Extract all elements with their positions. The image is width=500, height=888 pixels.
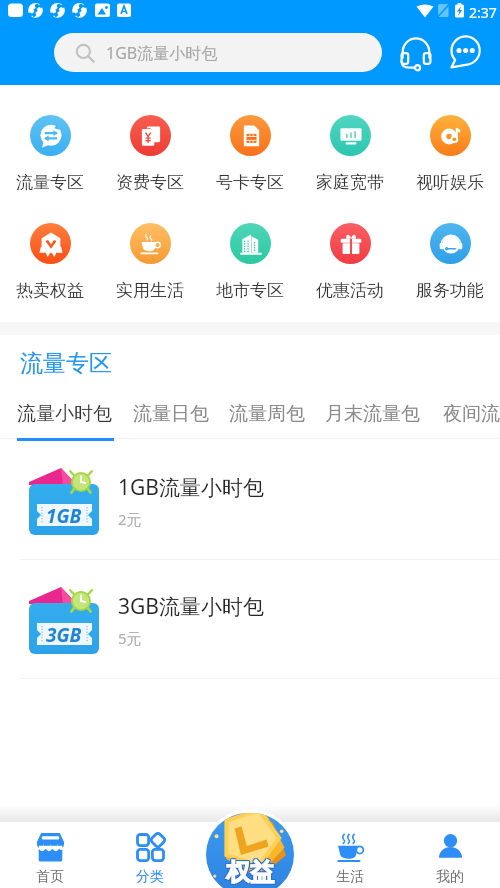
staticText: 2元 (118, 509, 142, 529)
staticText: 生活 (336, 868, 364, 886)
staticText: 权益 (226, 856, 274, 886)
staticText: 权益 (226, 857, 274, 887)
button[interactable]: 1GB (0, 441, 500, 560)
button[interactable]: 号卡专区 (200, 115, 300, 193)
staticText: 资费专区 (116, 172, 184, 193)
button[interactable]: 流量小时包 (17, 391, 114, 441)
button[interactable]: 首页 (0, 822, 100, 888)
staticText: 3GB (46, 622, 82, 648)
staticText: 月末流量包 (325, 402, 420, 426)
staticText: 优惠活动 (316, 280, 384, 301)
button[interactable]: 优惠活动 (300, 223, 400, 301)
button[interactable]: 夜间流量包 (443, 391, 500, 441)
button[interactable]: 月末流量包 (330, 391, 415, 441)
staticText: 1GB流量小时包 (118, 473, 264, 502)
staticText: 视听娱乐 (416, 172, 484, 193)
button[interactable]: 热卖权益 (0, 223, 100, 301)
button[interactable]: 视听娱乐 (400, 115, 500, 193)
staticText: 实用生活 (116, 280, 184, 301)
staticText: 权益 (225, 856, 273, 886)
button[interactable]: 我的 (400, 822, 500, 888)
button[interactable]: Messages (448, 33, 481, 72)
staticText: 5元 (118, 628, 142, 648)
staticText: 权益 (227, 857, 275, 887)
button[interactable]: 3GB (0, 560, 500, 679)
staticText: 服务功能 (416, 280, 484, 301)
staticText: 地市专区 (216, 280, 284, 301)
staticText: 首页 (36, 868, 64, 886)
staticText: 2:37 (469, 3, 497, 22)
staticText: 3GB流量小时包 (118, 592, 264, 621)
button[interactable]: 实用生活 (100, 223, 200, 301)
staticText: 流量周包 (229, 402, 305, 426)
button[interactable]: 生活 (300, 822, 400, 888)
staticText: 夜间流量包 (443, 402, 500, 426)
button[interactable]: 分类 (100, 822, 200, 888)
staticText: 号卡专区 (216, 172, 284, 193)
button[interactable]: 权益 (206, 813, 294, 888)
button[interactable]: Customer service (397, 33, 435, 72)
staticText: 热卖权益 (16, 280, 84, 301)
staticText: 1GB (46, 503, 82, 529)
button[interactable]: 地市专区 (200, 223, 300, 301)
staticText: 流量专区 (20, 349, 112, 378)
staticText: 分类 (136, 868, 164, 886)
staticText: 权益 (226, 858, 274, 888)
button[interactable]: 流量专区 (0, 115, 100, 193)
button[interactable]: 家庭宽带 (300, 115, 400, 193)
staticText: 流量小时包 (17, 402, 112, 426)
staticText: 权益 (225, 858, 273, 888)
button[interactable]: 服务功能 (400, 223, 500, 301)
staticText: 1GB流量小时包 (106, 42, 218, 64)
button[interactable]: 流量日包 (137, 391, 205, 441)
button[interactable]: 1GB流量小时包 (54, 33, 382, 72)
button[interactable]: 资费专区 (100, 115, 200, 193)
button[interactable]: 流量周包 (233, 391, 301, 441)
staticText: 流量专区 (16, 172, 84, 193)
staticText: 家庭宽带 (316, 172, 384, 193)
staticText: 权益 (227, 856, 275, 886)
staticText: 我的 (436, 868, 464, 886)
staticText: 流量日包 (133, 402, 209, 426)
staticText: 权益 (227, 858, 275, 888)
staticText: 权益 (225, 857, 273, 887)
